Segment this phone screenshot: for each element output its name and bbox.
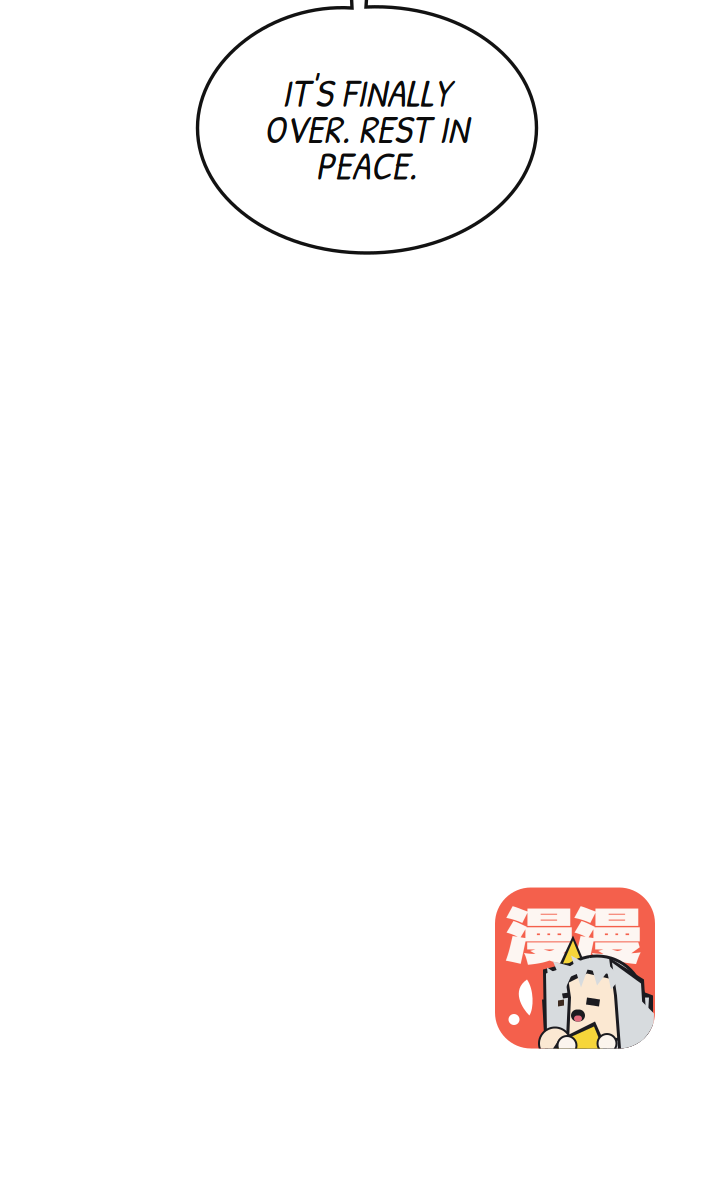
staticText: PEACE. xyxy=(315,139,416,192)
staticText: OVER. REST IN xyxy=(263,103,468,155)
staticText: 漫漫 xyxy=(501,878,647,985)
staticText: IT'S FINALLY xyxy=(281,66,450,119)
